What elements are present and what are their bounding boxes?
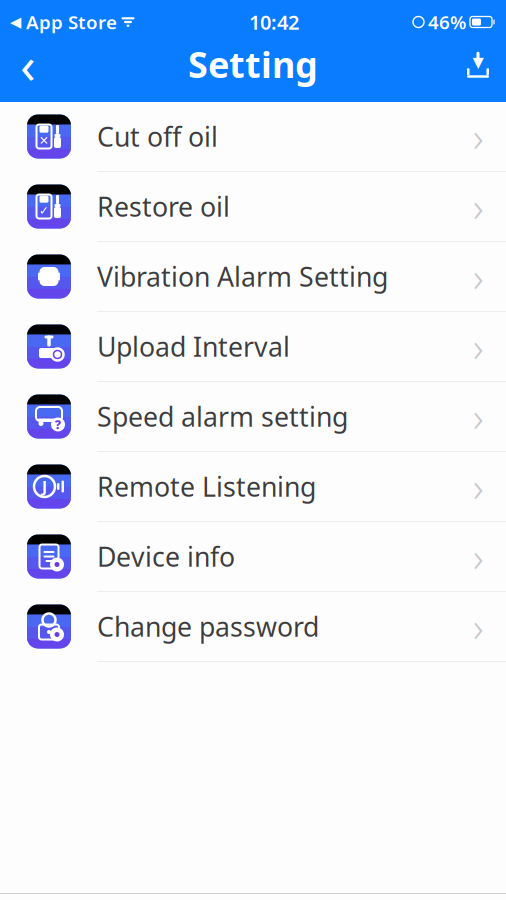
staticText: ›	[473, 600, 484, 653]
staticText: ‹	[20, 30, 36, 98]
staticText: Cut off oil	[97, 119, 218, 154]
staticText: ›	[473, 530, 484, 583]
button[interactable]: Upload Interval	[0, 312, 506, 382]
staticText: Vibration Alarm Setting	[97, 259, 388, 294]
staticText: ?	[55, 416, 61, 432]
staticText: J	[42, 476, 47, 497]
staticText: ›	[473, 180, 484, 233]
staticText: Upload Interval	[97, 329, 290, 364]
staticText: ›	[473, 390, 484, 443]
staticText: ›	[473, 320, 484, 373]
button[interactable]: ✓	[0, 172, 506, 242]
staticText: ▼	[472, 54, 483, 70]
staticText: Device info	[97, 539, 235, 574]
staticText: ✕	[39, 134, 49, 147]
staticText: Remote Listening	[97, 469, 316, 504]
staticText: ✓	[39, 204, 49, 217]
staticText: 46%	[428, 10, 466, 34]
staticText: ◀	[10, 14, 21, 30]
button[interactable]: Back	[0, 35, 56, 93]
button[interactable]: ✕	[0, 102, 506, 172]
staticText: Change password	[97, 609, 319, 644]
staticText: Setting	[188, 40, 318, 88]
button[interactable]: Change password	[0, 592, 506, 662]
staticText: Speed alarm setting	[97, 399, 348, 434]
staticText: ›	[473, 250, 484, 303]
button[interactable]: Vibration Alarm Setting	[0, 242, 506, 312]
staticText: ›	[473, 110, 484, 163]
button[interactable]: ?	[0, 382, 506, 452]
button[interactable]: Download	[450, 35, 506, 93]
staticText: Restore oil	[97, 189, 230, 224]
staticText: App Store	[21, 10, 117, 34]
staticText: 10:42	[249, 9, 299, 35]
staticText: ›	[473, 460, 484, 513]
button[interactable]: Device info	[0, 522, 506, 592]
button[interactable]: J	[0, 452, 506, 522]
